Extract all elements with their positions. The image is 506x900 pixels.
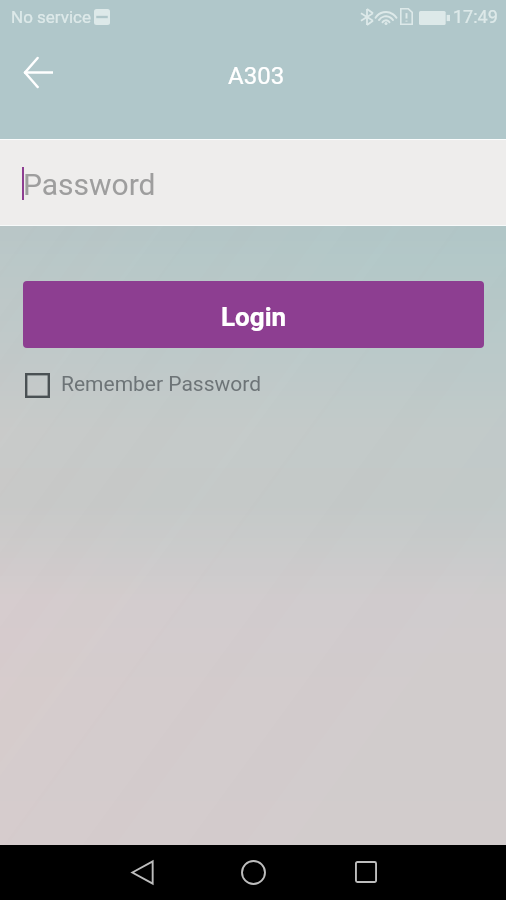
button[interactable]: Remember Password — [25, 369, 262, 401]
staticText: Login — [221, 302, 287, 332]
button[interactable]: Password — [0, 139, 506, 226]
button[interactable]: Back — [118, 848, 166, 896]
staticText: No service — [11, 7, 92, 27]
button[interactable]: Login — [23, 281, 484, 348]
button[interactable]: Back — [10, 44, 66, 100]
button[interactable]: Recent apps — [342, 848, 390, 896]
staticText: 17:49 — [453, 6, 498, 27]
staticText: Password — [23, 167, 156, 202]
staticText: A303 — [228, 62, 285, 90]
button[interactable]: Home — [229, 848, 277, 896]
staticText: Remember Password — [61, 372, 262, 397]
